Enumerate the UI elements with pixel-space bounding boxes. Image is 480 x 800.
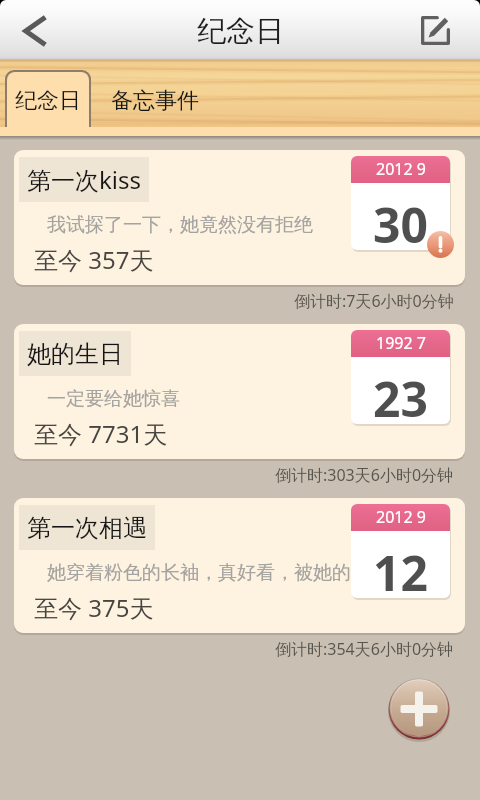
staticText: 12: [373, 540, 428, 598]
staticText: 我试探了一下，她竟然没有拒绝: [47, 213, 351, 237]
staticText: 纪念日: [15, 87, 81, 115]
staticText: 倒计时:354天6小时0分钟: [275, 638, 454, 660]
staticText: 她穿着粉色的长袖，真好看，被她的气质深深吸引: [47, 561, 351, 585]
staticText: 她的生日: [27, 339, 123, 369]
staticText: 至今 357天: [34, 243, 154, 276]
staticText: 2012 9: [376, 158, 426, 180]
staticText: 2012 9: [376, 506, 426, 528]
staticText: 至今 375天: [34, 591, 154, 624]
staticText: 倒计时:303天6小时0分钟: [275, 464, 454, 486]
staticText: 23: [373, 366, 428, 424]
staticText: 第一次相遇: [27, 513, 147, 543]
button[interactable]: Edit: [422, 0, 480, 60]
staticText: 倒计时:7天6小时0分钟: [294, 290, 454, 312]
button[interactable]: 纪念日: [7, 72, 89, 127]
staticText: 一定要给她惊喜: [47, 387, 351, 411]
button[interactable]: Back: [0, 0, 62, 60]
button[interactable]: 第一次kiss: [14, 150, 465, 285]
button[interactable]: 她的生日: [14, 324, 465, 459]
staticText: 第一次kiss: [27, 163, 141, 196]
button[interactable]: 备忘事件: [97, 70, 212, 127]
button[interactable]: Add: [388, 678, 450, 740]
staticText: 纪念日: [197, 13, 284, 50]
staticText: 备忘事件: [111, 87, 199, 115]
button[interactable]: 第一次相遇: [14, 498, 465, 633]
staticText: 30: [373, 192, 428, 250]
staticText: 1992 7: [376, 332, 426, 354]
staticText: 至今 7731天: [34, 417, 168, 450]
